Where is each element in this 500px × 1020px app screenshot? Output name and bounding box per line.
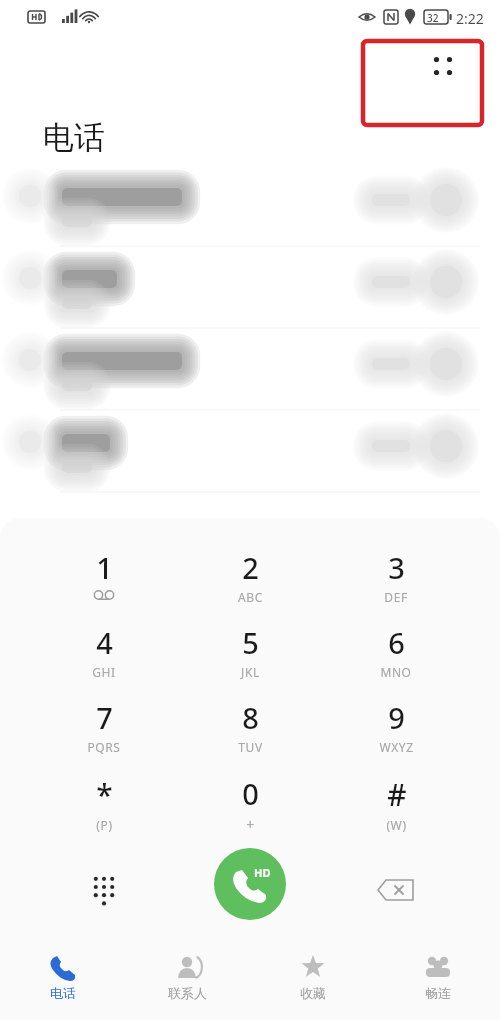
staticText: *	[96, 774, 113, 815]
staticText: 4	[96, 623, 113, 662]
button[interactable]: 电话	[0, 942, 125, 1020]
staticText: 电话	[43, 118, 105, 157]
button[interactable]: 4	[52, 623, 156, 695]
staticText: +	[246, 815, 255, 834]
staticText: 3	[388, 548, 405, 587]
staticText: (P)	[96, 817, 113, 833]
staticText: (W)	[386, 817, 407, 833]
staticText: 收藏	[300, 985, 326, 1001]
button[interactable]: #	[344, 774, 448, 846]
staticText: 6	[388, 623, 405, 662]
staticText: MNO	[380, 664, 412, 680]
staticText: TUV	[238, 739, 263, 755]
staticText: 5	[242, 623, 259, 662]
staticText: 2	[242, 548, 259, 587]
button[interactable]: Hide keypad	[70, 856, 138, 924]
button[interactable]: 畅连	[375, 942, 500, 1020]
button[interactable]: 0	[198, 774, 302, 846]
staticText: WXYZ	[379, 739, 414, 755]
staticText: HD	[254, 865, 271, 880]
staticText: 1	[96, 548, 113, 587]
staticText: 8	[242, 698, 259, 737]
staticText: GHI	[92, 664, 116, 680]
staticText: DEF	[384, 589, 408, 605]
button[interactable]: 2	[198, 548, 302, 620]
button[interactable]: 5	[198, 623, 302, 695]
staticText: 联系人	[168, 985, 207, 1001]
staticText: ABC	[238, 589, 263, 605]
staticText: 电话	[50, 985, 76, 1001]
button[interactable]: 收藏	[250, 942, 375, 1020]
staticText: #	[387, 774, 407, 815]
button[interactable]: 8	[198, 698, 302, 770]
button[interactable]: 3	[344, 548, 448, 620]
staticText: 畅连	[425, 985, 451, 1001]
staticText: 7	[96, 698, 113, 737]
button[interactable]: 联系人	[125, 942, 250, 1020]
button[interactable]: *	[52, 774, 156, 846]
button[interactable]: 6	[344, 623, 448, 695]
staticText: PQRS	[87, 739, 121, 755]
staticText: 2:22	[456, 9, 484, 28]
button[interactable]: 1	[52, 548, 156, 620]
button[interactable]: Call	[214, 848, 286, 920]
button[interactable]: Backspace	[362, 856, 430, 924]
button[interactable]: More options	[415, 38, 471, 94]
staticText: 32	[427, 11, 439, 25]
staticText: 9	[388, 698, 405, 737]
staticText: 0	[242, 774, 259, 813]
button[interactable]: 9	[344, 698, 448, 770]
staticText: JKL	[241, 664, 260, 680]
button[interactable]: 7	[52, 698, 156, 770]
